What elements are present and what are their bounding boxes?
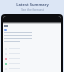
staticText: Latest Summary	[16, 2, 49, 7]
button[interactable]	[5, 66, 61, 71]
button[interactable]	[5, 51, 61, 56]
button[interactable]	[5, 46, 61, 51]
staticText: See the forecast	[21, 8, 44, 12]
button[interactable]	[5, 61, 61, 66]
button[interactable]	[5, 56, 61, 61]
button[interactable]: Badge	[4, 29, 7, 31]
